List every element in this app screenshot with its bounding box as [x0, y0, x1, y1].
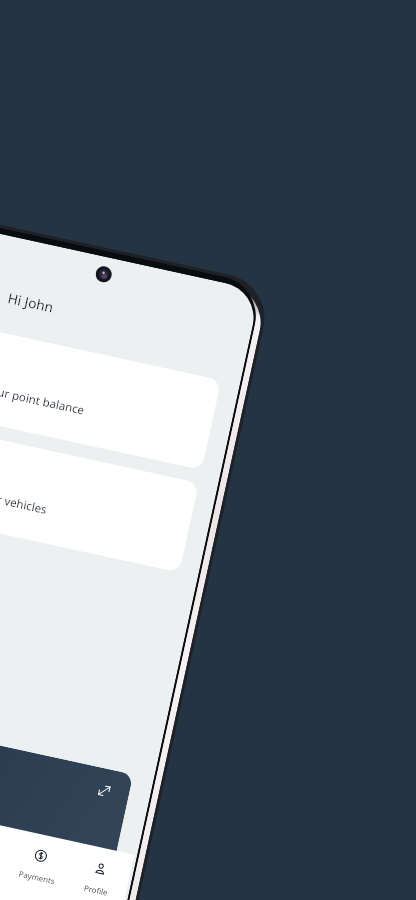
button[interactable]: Charge: [0, 815, 15, 900]
staticText: Hi John: [6, 288, 56, 317]
button[interactable]: Expand: [0, 718, 133, 883]
button[interactable]: Your vehicles: [0, 425, 199, 573]
button[interactable]: Payments: [0, 829, 76, 900]
other: Expand: [97, 784, 111, 798]
staticText: Your point balance: [0, 381, 86, 419]
button[interactable]: Your point balance: [0, 323, 221, 470]
staticText: Profile: [83, 883, 109, 899]
staticText: Your vehicles: [0, 487, 48, 518]
staticText: Payments: [17, 869, 56, 887]
button[interactable]: Profile: [57, 842, 134, 900]
